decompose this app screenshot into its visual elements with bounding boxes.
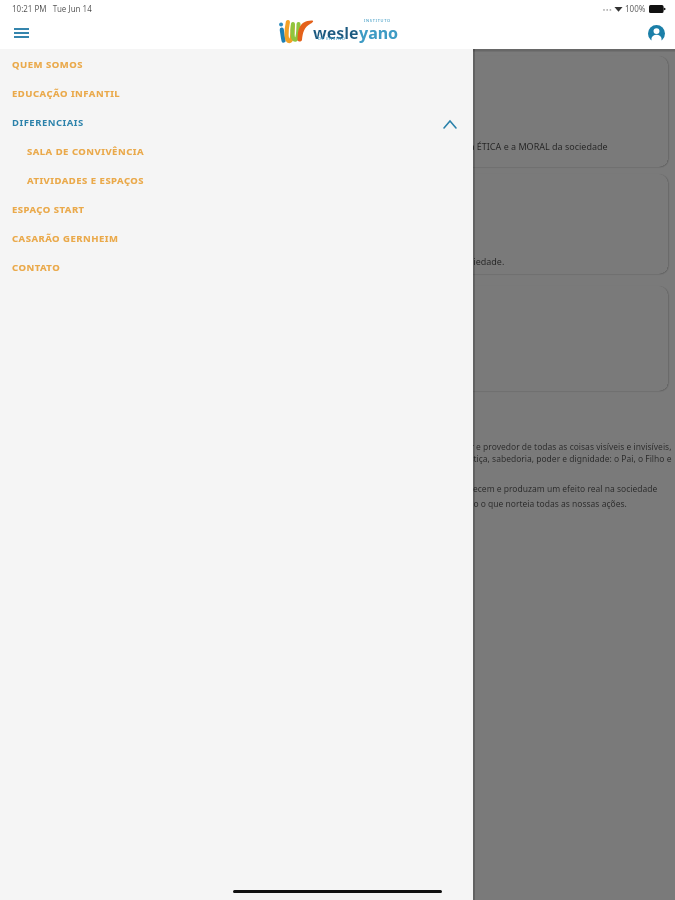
staticText: ESPAÇO START	[12, 203, 85, 216]
staticText: QUEM SOMOS	[12, 58, 83, 71]
button[interactable]: CONTATO	[0, 253, 473, 282]
staticText: ATIVIDADES E ESPAÇOS	[27, 174, 145, 187]
staticText: wesle	[313, 22, 359, 44]
button[interactable]: Open navigation menu	[7, 19, 35, 47]
staticText: 10:21 PM Tue Jun 14	[12, 3, 92, 14]
button[interactable]	[7, 174, 668, 274]
staticText: DIFERENCIAIS	[12, 116, 84, 129]
staticText: 100%	[625, 3, 646, 14]
button[interactable]: CASARÃO GERNHEIM	[0, 224, 473, 253]
staticText: yano	[359, 22, 399, 44]
staticText: Cremos que os valores cristãos enriquece…	[321, 483, 658, 495]
button[interactable]: QUEM SOMOS	[0, 50, 473, 79]
button[interactable]: SALA DE CONVIVÊNCIA	[0, 137, 473, 166]
staticText: CASARÃO GERNHEIM	[12, 232, 119, 245]
staticText: pleno em amor, graça, justiça, sabedoria…	[371, 453, 672, 465]
button[interactable]: EDUCAÇÃO INFANTIL	[0, 79, 473, 108]
button[interactable]	[7, 286, 668, 391]
staticText: Uma Educação transformadora para a socie…	[296, 255, 505, 267]
staticText: Uma Educação para promover a ÉTICA e a M…	[339, 140, 608, 152]
staticText: CONTATO	[12, 261, 61, 274]
staticText: SALA DE CONVIVÊNCIA	[27, 145, 145, 158]
button[interactable]: DIFERENCIAIS	[0, 108, 473, 137]
staticText: INSTITUTO	[364, 18, 391, 23]
button[interactable]: Account	[643, 20, 669, 46]
button[interactable]	[7, 56, 668, 167]
staticText: DE ENSINO	[318, 36, 346, 41]
button[interactable]: ESPAÇO START	[0, 195, 473, 224]
staticText: Cremos em um só Deus, criador e provedor…	[346, 441, 672, 453]
button[interactable]: ATIVIDADES E ESPAÇOS	[0, 166, 473, 195]
staticText: Somos uma instituição cristã, e é isso o…	[330, 498, 627, 510]
staticText: EDUCAÇÃO INFANTIL	[12, 87, 121, 100]
